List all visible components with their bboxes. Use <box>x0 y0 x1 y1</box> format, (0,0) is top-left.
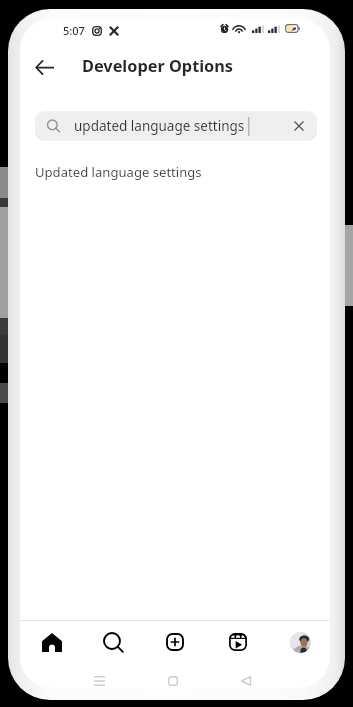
staticText: 5:07 <box>63 23 85 38</box>
button[interactable]: Create <box>151 621 199 663</box>
button[interactable]: Back <box>28 51 60 83</box>
button[interactable]: Clear search <box>286 113 312 139</box>
button[interactable]: Reels <box>214 621 262 663</box>
button[interactable]: Home <box>28 621 76 663</box>
staticText: updated language settings <box>74 117 245 135</box>
button[interactable]: Home <box>157 665 189 688</box>
staticText: Developer Options <box>82 55 234 77</box>
button[interactable]: Recent apps <box>83 665 115 688</box>
button[interactable]: Search <box>89 621 137 663</box>
button[interactable]: updated language settings <box>35 111 317 141</box>
button[interactable]: Profile <box>276 621 324 663</box>
staticText: Updated language settings <box>35 163 202 181</box>
button[interactable]: Back <box>230 665 262 688</box>
